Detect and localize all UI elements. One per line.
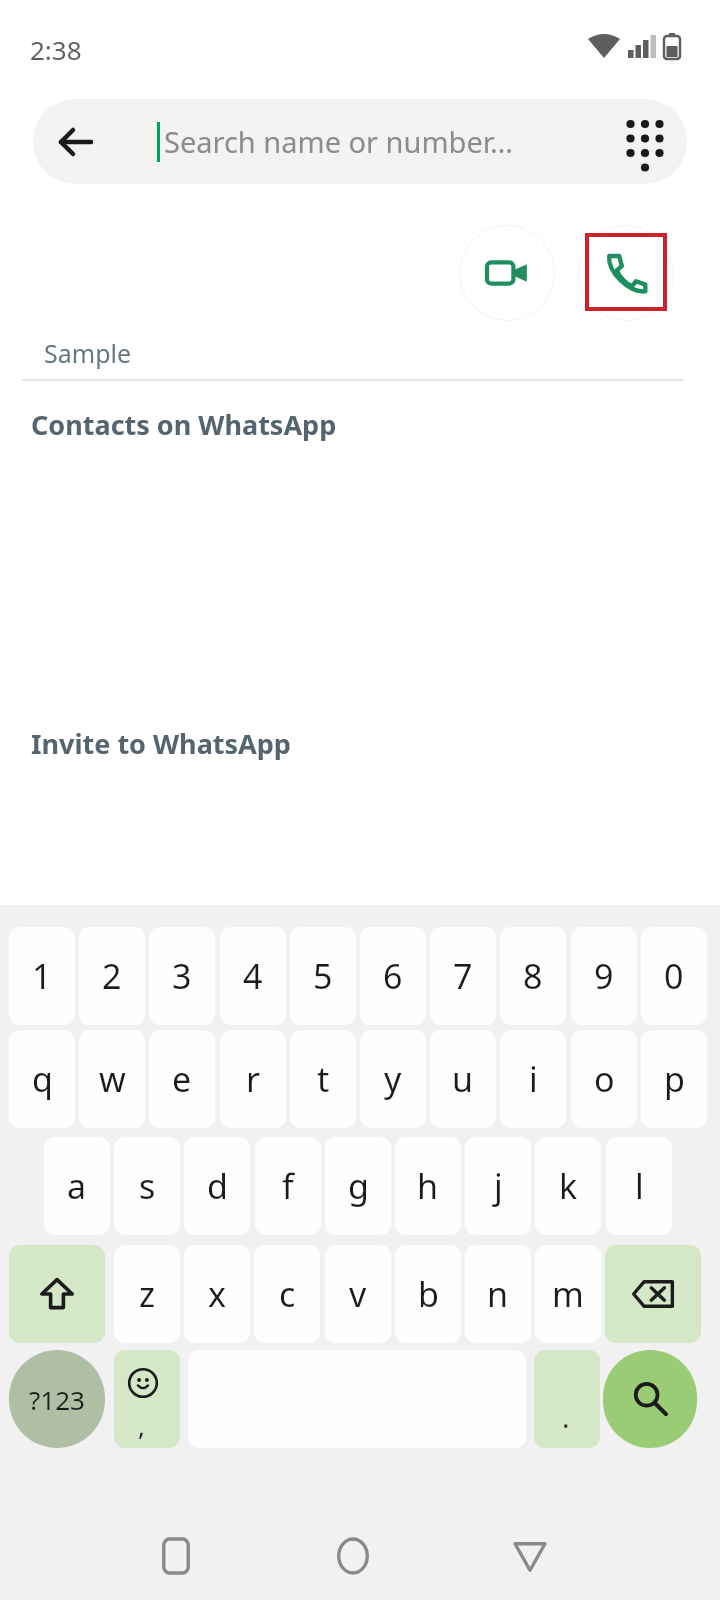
staticText: 6 xyxy=(383,953,403,999)
staticText: 8 xyxy=(523,953,543,999)
button[interactable]: Dialpad xyxy=(602,99,687,184)
staticText: c xyxy=(279,1271,296,1317)
button[interactable]: ?123 xyxy=(9,1350,105,1448)
button[interactable]: z xyxy=(114,1245,180,1343)
staticText: t xyxy=(317,1056,330,1102)
staticText: f xyxy=(282,1163,294,1209)
staticText: 2 xyxy=(102,953,122,999)
button[interactable]: 4 xyxy=(220,927,286,1025)
button[interactable]: 7 xyxy=(430,927,496,1025)
button[interactable]: t xyxy=(290,1030,356,1128)
button[interactable]: Video call xyxy=(459,225,555,321)
button[interactable]: w xyxy=(79,1030,145,1128)
staticText: v xyxy=(349,1271,367,1317)
staticText: 0 xyxy=(664,953,684,999)
staticText: z xyxy=(139,1271,155,1317)
button[interactable]: v xyxy=(325,1245,391,1343)
staticText: Sample xyxy=(44,336,132,370)
button[interactable]: . xyxy=(534,1350,600,1448)
button[interactable]: k xyxy=(535,1137,601,1235)
button[interactable]: g xyxy=(325,1137,391,1235)
button[interactable]: 8 xyxy=(500,927,566,1025)
staticText: b xyxy=(418,1271,439,1317)
button[interactable]: n xyxy=(465,1245,531,1343)
staticText: ?123 xyxy=(29,1382,85,1417)
button[interactable]: e xyxy=(149,1030,215,1128)
staticText: 7 xyxy=(453,953,473,999)
staticText: 2:38 xyxy=(30,32,82,67)
staticText: d xyxy=(207,1163,228,1209)
staticText: o xyxy=(594,1056,615,1102)
staticText: 9 xyxy=(594,953,614,999)
button[interactable]: Back xyxy=(494,1520,566,1592)
staticText: s xyxy=(139,1163,156,1209)
staticText: g xyxy=(348,1163,369,1209)
staticText: Invite to WhatsApp xyxy=(31,725,291,762)
staticText: r xyxy=(246,1056,261,1102)
button[interactable]: l xyxy=(606,1137,672,1235)
staticText: Search name or number… xyxy=(164,122,514,161)
staticText: 3 xyxy=(172,953,192,999)
button[interactable]: u xyxy=(430,1030,496,1128)
staticText: n xyxy=(487,1271,509,1317)
button[interactable]: Home xyxy=(317,1520,389,1592)
staticText: 4 xyxy=(243,953,263,999)
staticText: . xyxy=(562,1398,570,1436)
button[interactable]: c xyxy=(254,1245,320,1343)
button[interactable]: q xyxy=(9,1030,75,1128)
button[interactable]: b xyxy=(395,1245,461,1343)
button[interactable]: j xyxy=(465,1137,531,1235)
staticText: y xyxy=(384,1056,402,1102)
staticText: 5 xyxy=(313,953,333,999)
button[interactable]: 6 xyxy=(360,927,426,1025)
button[interactable]: Back xyxy=(33,99,118,184)
button[interactable]: m xyxy=(535,1245,601,1343)
button[interactable]: 5 xyxy=(290,927,356,1025)
button[interactable]: Voice call xyxy=(585,233,667,311)
staticText: m xyxy=(552,1271,584,1317)
staticText: Contacts on WhatsApp xyxy=(31,406,337,443)
staticText: i xyxy=(529,1056,538,1102)
staticText: j xyxy=(494,1163,503,1209)
button[interactable]: i xyxy=(500,1030,566,1128)
staticText: x xyxy=(208,1271,226,1317)
button[interactable]: 1 xyxy=(9,927,75,1025)
button[interactable]: 0 xyxy=(641,927,707,1025)
staticText: u xyxy=(452,1056,474,1102)
button[interactable]: p xyxy=(641,1030,707,1128)
staticText: a xyxy=(67,1163,87,1209)
staticText: e xyxy=(172,1056,192,1102)
button[interactable]: y xyxy=(360,1030,426,1128)
button[interactable]: Search xyxy=(603,1350,697,1448)
staticText: , xyxy=(138,1408,145,1443)
button[interactable]: o xyxy=(571,1030,637,1128)
button[interactable]: h xyxy=(395,1137,461,1235)
button[interactable]: 9 xyxy=(571,927,637,1025)
button[interactable]: Emoji xyxy=(114,1350,180,1448)
button[interactable]: x xyxy=(184,1245,250,1343)
button[interactable]: f xyxy=(255,1137,321,1235)
staticText: h xyxy=(417,1163,439,1209)
staticText: w xyxy=(99,1056,126,1102)
staticText: p xyxy=(664,1056,685,1102)
staticText: 1 xyxy=(32,953,52,999)
button[interactable]: 2 xyxy=(79,927,145,1025)
button[interactable]: s xyxy=(114,1137,180,1235)
button[interactable]: 3 xyxy=(149,927,215,1025)
button[interactable]: d xyxy=(184,1137,250,1235)
button[interactable]: Shift xyxy=(9,1245,105,1343)
staticText: q xyxy=(32,1056,53,1102)
staticText: k xyxy=(559,1163,578,1209)
button[interactable]: Backspace xyxy=(605,1245,701,1343)
button[interactable]: Recent apps xyxy=(140,1520,212,1592)
button[interactable]: a xyxy=(44,1137,110,1235)
staticText: l xyxy=(635,1163,644,1209)
button[interactable]: r xyxy=(220,1030,286,1128)
